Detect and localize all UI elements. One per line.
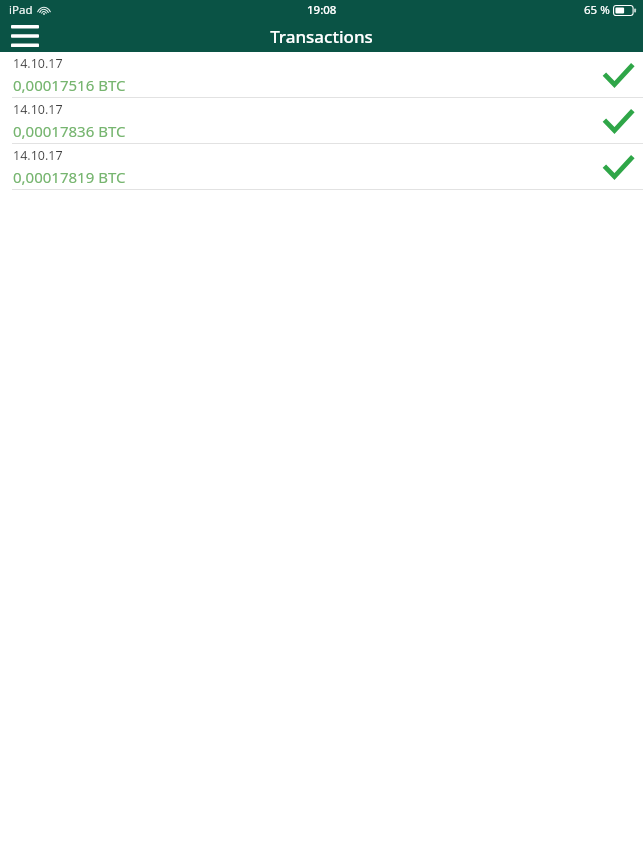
staticText: 0,00017836 BTC bbox=[13, 121, 126, 141]
staticText: iPad bbox=[9, 2, 33, 18]
staticText: 14.10.17 bbox=[13, 101, 63, 118]
staticText: Transactions bbox=[0, 25, 643, 48]
staticText: 19:08 bbox=[307, 2, 337, 18]
staticText: 14.10.17 bbox=[13, 147, 63, 164]
staticText: 65 % bbox=[584, 2, 610, 18]
button[interactable]: 14.10.17 bbox=[0, 52, 643, 97]
button[interactable]: Open navigation menu bbox=[0, 20, 50, 52]
button[interactable]: 14.10.17 bbox=[0, 98, 643, 143]
staticText: 0,00017819 BTC bbox=[13, 167, 126, 187]
staticText: 14.10.17 bbox=[13, 55, 63, 72]
staticText: 0,00017516 BTC bbox=[13, 75, 126, 95]
button[interactable]: 14.10.17 bbox=[0, 144, 643, 189]
